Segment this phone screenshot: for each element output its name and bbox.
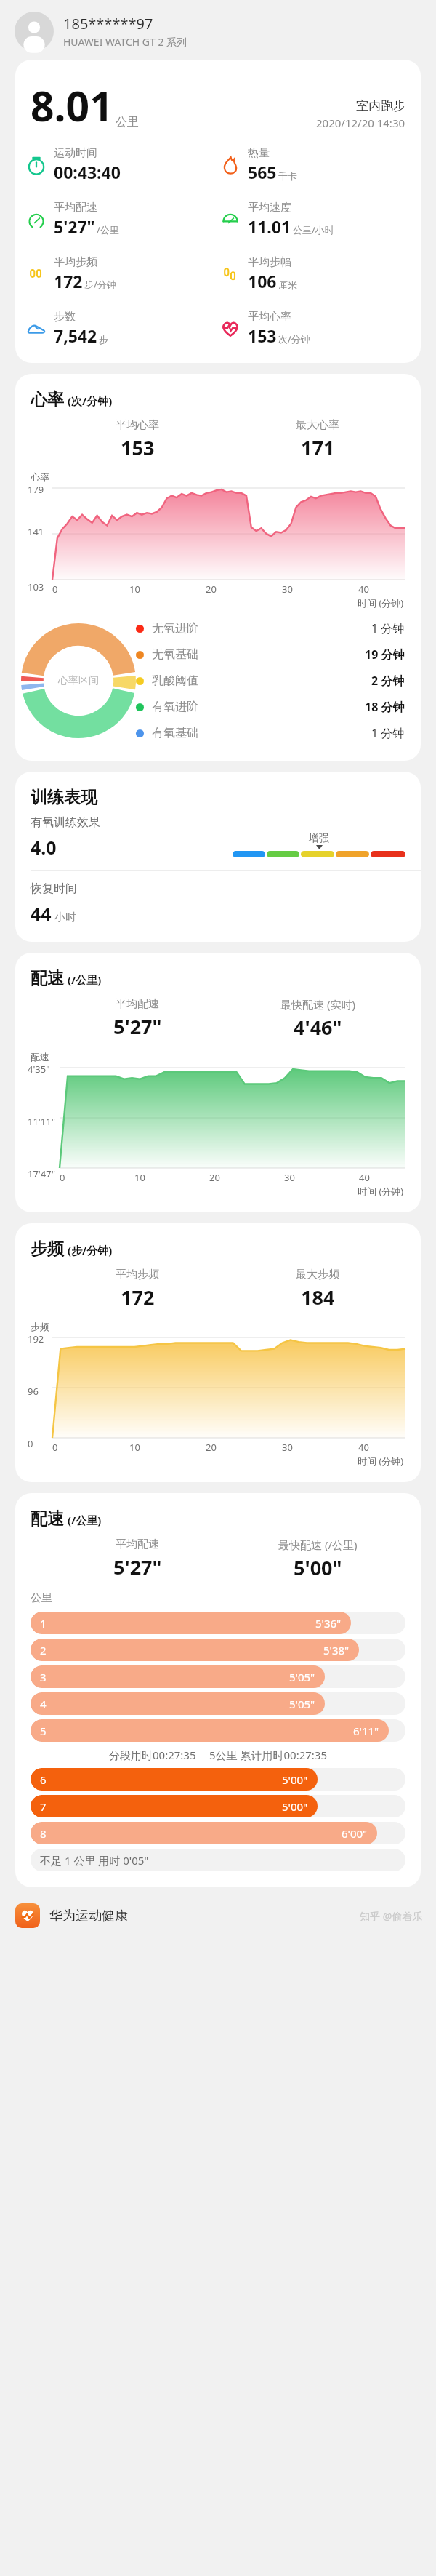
staticText: 平均配速 xyxy=(116,997,159,1011)
staticText: 0 xyxy=(28,1437,33,1450)
staticText: /公里 xyxy=(97,223,119,236)
staticText: 4.0 xyxy=(31,835,57,860)
staticText: 有氧进阶 xyxy=(152,700,365,714)
staticText: 千卡 xyxy=(278,170,297,182)
staticText: 最大心率 xyxy=(296,418,339,432)
button[interactable]: 步数 xyxy=(24,306,218,351)
staticText: 步/分钟 xyxy=(84,278,116,291)
staticText: 时间 (分钟) xyxy=(358,1455,404,1468)
button[interactable]: 有氧进阶 xyxy=(136,694,412,720)
staticText: 平均步频 xyxy=(116,1268,159,1281)
button[interactable]: 平均步频 xyxy=(24,252,218,296)
staticText: 40 xyxy=(359,1171,370,1184)
staticText: 192 xyxy=(28,1332,44,1345)
staticText: (步/分钟) xyxy=(68,1243,113,1257)
staticText: 20 xyxy=(209,1171,220,1184)
staticText: 平均步频 xyxy=(54,255,97,269)
staticText: 11.01 xyxy=(248,215,291,238)
button[interactable]: 2 xyxy=(31,1639,405,1661)
staticText: 8.01 xyxy=(31,77,113,134)
staticText: 30 xyxy=(282,583,293,596)
staticText: 172 xyxy=(54,270,83,292)
button[interactable]: 185******97 xyxy=(0,0,436,60)
button[interactable]: 7 xyxy=(31,1795,405,1817)
button[interactable]: 平均配速 xyxy=(24,197,218,241)
button[interactable]: 有氧基础 xyxy=(136,720,412,746)
staticText: 有氧训练效果 xyxy=(31,815,100,830)
staticText: 小时 xyxy=(54,911,76,924)
staticText: 平均心率 xyxy=(116,418,159,432)
staticText: 8 xyxy=(40,1826,47,1841)
staticText: 平均步幅 xyxy=(248,255,291,269)
button[interactable]: 6 xyxy=(31,1768,405,1791)
staticText: 恢复时间 xyxy=(31,881,77,896)
button[interactable]: 运动时间 xyxy=(24,143,218,187)
staticText: 配速 xyxy=(31,968,64,989)
staticText: (/公里) xyxy=(68,1513,102,1527)
staticText: 热量 xyxy=(248,146,270,160)
staticText: 心率区间 xyxy=(58,674,99,687)
staticText: 训练表现 xyxy=(31,787,97,808)
staticText: 增强 xyxy=(309,832,329,845)
staticText: 分段用时00:27:35 xyxy=(109,1748,196,1762)
button[interactable]: 1 xyxy=(31,1612,405,1634)
button[interactable]: 华为运动健康 xyxy=(0,1903,436,1943)
staticText: 4'35" xyxy=(28,1063,50,1076)
staticText: 配速 xyxy=(31,1508,64,1529)
staticText: 172 xyxy=(121,1284,155,1311)
staticText: 184 xyxy=(301,1284,335,1311)
staticText: 心率 xyxy=(31,389,64,410)
staticText: 00:43:40 xyxy=(54,161,121,183)
staticText: 96 xyxy=(28,1385,39,1398)
staticText: 平均速度 xyxy=(248,201,291,215)
other: 华为运动健康 xyxy=(15,1903,40,1928)
staticText: 心率 xyxy=(31,471,49,483)
staticText: 平均心率 xyxy=(248,310,291,324)
staticText: 2 分钟 xyxy=(371,673,405,689)
staticText: 11'11" xyxy=(28,1115,55,1128)
button[interactable]: 无氧进阶 xyxy=(136,615,412,641)
staticText: 次/分钟 xyxy=(278,332,310,345)
staticText: 185******97 xyxy=(63,14,153,33)
button[interactable]: 5 xyxy=(31,1719,405,1742)
staticText: 40 xyxy=(358,1441,369,1454)
button[interactable]: 平均速度 xyxy=(218,197,412,241)
button[interactable]: 平均步幅 xyxy=(218,252,412,296)
staticText: 有氧基础 xyxy=(152,726,371,740)
staticText: 平均配速 xyxy=(116,1537,159,1551)
staticText: 17'47" xyxy=(28,1167,55,1180)
button[interactable]: 无氧基础 xyxy=(136,641,412,668)
staticText: 7 xyxy=(40,1799,47,1814)
staticText: 时间 (分钟) xyxy=(358,1185,404,1198)
staticText: (次/分钟) xyxy=(68,393,113,408)
staticText: 106 xyxy=(248,270,277,292)
staticText: 0 xyxy=(52,1441,58,1454)
button[interactable]: 乳酸阈值 xyxy=(136,668,412,694)
staticText: 公里/小时 xyxy=(293,223,334,236)
staticText: 5公里 累计用时00:27:35 xyxy=(209,1748,328,1762)
staticText: 配速 xyxy=(31,1051,49,1063)
staticText: 6'00" xyxy=(342,1826,368,1841)
button[interactable]: 8 xyxy=(31,1822,405,1844)
button[interactable]: 4 xyxy=(31,1692,405,1715)
staticText: 20 xyxy=(206,583,217,596)
staticText: 5'27" xyxy=(113,1553,162,1580)
staticText: 3 xyxy=(40,1670,47,1684)
staticText: 40 xyxy=(358,583,369,596)
button[interactable]: 3 xyxy=(31,1665,405,1688)
button[interactable]: 平均心率 xyxy=(218,306,412,351)
staticText: 179 xyxy=(28,483,44,496)
staticText: 步频 xyxy=(31,1321,49,1332)
staticText: 最快配速 (实时) xyxy=(280,997,355,1012)
staticText: 19 分钟 xyxy=(365,647,405,663)
staticText: 5'27" xyxy=(54,215,95,238)
staticText: 步 xyxy=(99,334,108,345)
staticText: 5'05" xyxy=(289,1697,315,1711)
staticText: 步数 xyxy=(54,310,76,324)
staticText: 4 xyxy=(40,1697,47,1711)
staticText: 10 xyxy=(134,1171,145,1184)
staticText: 153 xyxy=(121,434,155,461)
staticText: 5'05" xyxy=(289,1670,315,1684)
button[interactable]: 热量 xyxy=(218,143,412,187)
staticText: 6 xyxy=(40,1772,47,1787)
